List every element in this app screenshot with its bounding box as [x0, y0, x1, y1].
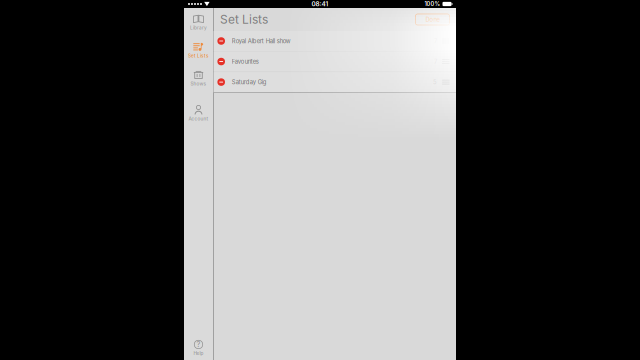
staticText: 08:41 [311, 0, 328, 8]
staticText: 5 [433, 79, 437, 86]
button[interactable]: Favourites [214, 51, 456, 71]
button[interactable]: Saturday Gig [214, 72, 456, 92]
staticText: Help [193, 351, 203, 356]
staticText: Set Lists [220, 12, 268, 27]
staticText: 100% [424, 1, 440, 7]
staticText: Shows [190, 81, 206, 87]
staticText: ? [196, 340, 200, 349]
staticText: Saturday Gig [232, 79, 267, 86]
button[interactable]: Royal Albert Hall show [214, 31, 456, 51]
button[interactable]: Done [415, 14, 449, 25]
button[interactable]: Account [184, 105, 213, 121]
staticText: Account [188, 116, 208, 122]
staticText: Royal Albert Hall show [232, 37, 291, 45]
button[interactable]: Set Lists [184, 42, 213, 58]
button[interactable]: Library [184, 14, 213, 30]
staticText: Done [425, 16, 439, 23]
button[interactable]: Shows [184, 70, 213, 86]
staticText: Favourites [232, 58, 259, 65]
staticText: Set Lists [188, 53, 209, 59]
staticText: Library [190, 25, 207, 31]
button[interactable]: ? [184, 340, 213, 356]
